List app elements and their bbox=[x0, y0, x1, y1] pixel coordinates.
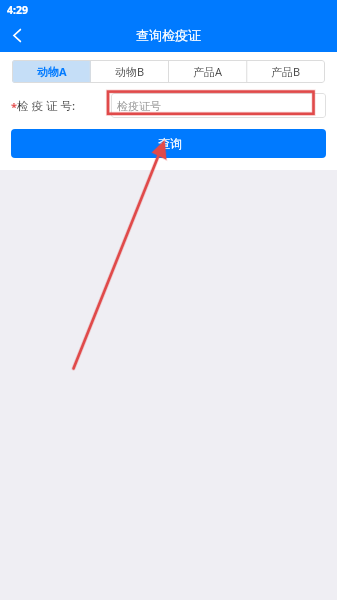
button[interactable]: 产品A bbox=[169, 60, 247, 83]
staticText: 动物B bbox=[115, 64, 145, 79]
button[interactable]: 检疫证号 bbox=[111, 93, 326, 118]
staticText: 查询检疫证 bbox=[136, 27, 201, 43]
staticText: 查询 bbox=[158, 136, 182, 151]
button[interactable]: 动物A bbox=[12, 60, 91, 83]
button[interactable]: Back bbox=[1, 19, 33, 51]
staticText: 检疫证号 bbox=[117, 99, 161, 113]
button[interactable]: 产品B bbox=[247, 60, 325, 83]
staticText: 产品A bbox=[193, 64, 223, 79]
staticText: 检 疫 证 号: bbox=[17, 98, 76, 114]
staticText: 4:29 bbox=[7, 3, 28, 17]
staticText: 动物A bbox=[37, 64, 67, 79]
staticText: 产品B bbox=[271, 64, 301, 79]
button[interactable]: 查询 bbox=[11, 129, 326, 158]
button[interactable]: 动物B bbox=[91, 60, 169, 83]
staticText: * bbox=[11, 99, 17, 114]
